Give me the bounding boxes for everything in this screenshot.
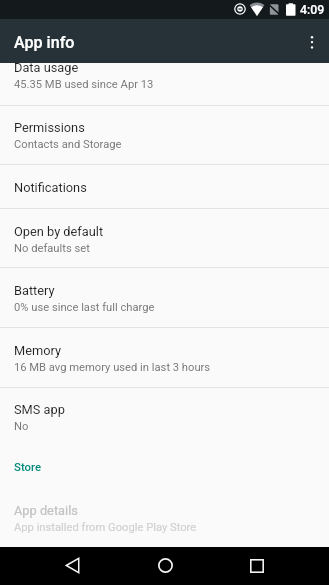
staticText: Open by default: [14, 224, 104, 239]
staticText: Notifications: [14, 180, 87, 195]
staticText: Memory: [14, 343, 61, 358]
staticText: App installed from Google Play Store: [14, 521, 197, 534]
button[interactable]: Data usage: [0, 47, 329, 106]
button[interactable]: App details: [0, 485, 329, 535]
button[interactable]: Memory: [0, 328, 329, 388]
staticText: No: [14, 420, 29, 433]
button[interactable]: Home: [136, 546, 194, 584]
staticText: 16 MB avg memory used in last 3 hours: [14, 361, 211, 374]
button[interactable]: Notifications: [0, 165, 329, 209]
button[interactable]: More options: [293, 19, 329, 63]
staticText: 4:09: [300, 3, 325, 17]
staticText: App info: [14, 33, 75, 52]
button[interactable]: Back: [43, 547, 101, 585]
staticText: Permissions: [14, 120, 85, 135]
button[interactable]: Battery: [0, 268, 329, 328]
button[interactable]: Permissions: [0, 106, 329, 165]
staticText: Store: [14, 460, 42, 473]
button[interactable]: Open by default: [0, 209, 329, 269]
staticText: Data usage: [14, 60, 79, 75]
button[interactable]: Store: [0, 447, 329, 485]
button[interactable]: Recent apps: [228, 547, 286, 585]
staticText: App details: [14, 503, 78, 518]
staticText: Contacts and Storage: [14, 138, 122, 151]
button[interactable]: SMS app: [0, 388, 329, 448]
staticText: 0% use since last full charge: [14, 301, 155, 314]
staticText: 45.35 MB used since Apr 13: [14, 78, 154, 91]
staticText: No defaults set: [14, 242, 90, 255]
staticText: SMS app: [14, 402, 65, 417]
staticText: Battery: [14, 283, 55, 298]
